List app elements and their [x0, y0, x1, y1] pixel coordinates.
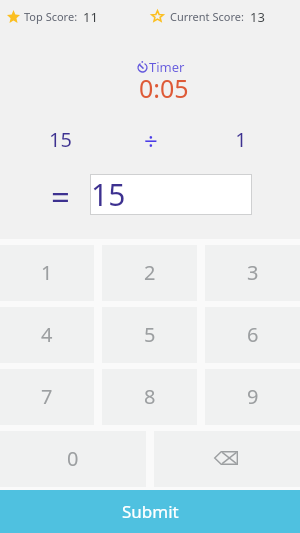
- staticText: ÷: [144, 124, 158, 157]
- staticText: Top Score:: [24, 9, 78, 24]
- staticText: Timer: [149, 58, 185, 76]
- staticText: Current Score:: [170, 9, 244, 24]
- staticText: 6: [247, 321, 259, 348]
- staticText: 9: [247, 383, 259, 410]
- button[interactable]: Submit: [0, 490, 300, 533]
- button[interactable]: Backspace: [154, 431, 300, 487]
- button[interactable]: 1: [0, 245, 94, 301]
- staticText: 8: [144, 383, 156, 410]
- staticText: 2: [144, 259, 156, 286]
- button[interactable]: 8: [102, 369, 197, 425]
- button[interactable]: 0: [0, 431, 146, 487]
- staticText: Submit: [122, 500, 179, 523]
- button[interactable]: 2: [102, 245, 197, 301]
- staticText: 5: [144, 321, 156, 348]
- staticText: 7: [41, 383, 53, 410]
- button[interactable]: 3: [205, 245, 300, 301]
- staticText: 13: [250, 8, 265, 26]
- button[interactable]: 7: [0, 369, 94, 425]
- staticText: 15: [15, 126, 106, 153]
- staticText: 0:05: [139, 71, 189, 105]
- staticText: 1: [41, 259, 53, 286]
- staticText: 4: [41, 321, 53, 348]
- staticText: 15: [91, 174, 126, 215]
- button[interactable]: 6: [205, 307, 300, 363]
- button[interactable]: 4: [0, 307, 94, 363]
- button[interactable]: 5: [102, 307, 197, 363]
- staticText: 1: [196, 126, 286, 153]
- button[interactable]: 9: [205, 369, 300, 425]
- staticText: 3: [247, 259, 259, 286]
- button[interactable]: 15: [90, 174, 252, 215]
- staticText: 0: [67, 445, 79, 472]
- staticText: =: [51, 174, 70, 219]
- staticText: 11: [83, 8, 98, 26]
